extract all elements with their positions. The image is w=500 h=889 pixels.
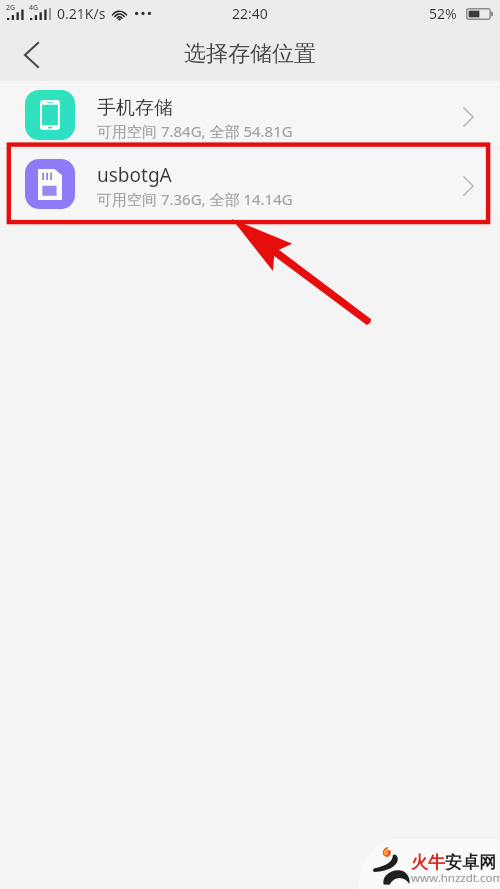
button[interactable]: 手机存储 bbox=[0, 81, 500, 148]
staticText: 可用空间 7.36G, 全部 14.14G bbox=[97, 189, 293, 209]
staticText: 安卓网 bbox=[445, 852, 496, 873]
button[interactable]: Back bbox=[0, 26, 55, 81]
staticText: 选择存储位置 bbox=[184, 40, 316, 68]
staticText: 2G bbox=[6, 3, 16, 13]
staticText: 52% bbox=[429, 4, 457, 23]
staticText: 4G bbox=[29, 3, 39, 13]
button[interactable]: usbotgA bbox=[0, 149, 500, 218]
staticText: www.hnzzdt.com bbox=[411, 870, 500, 886]
staticText: 22:40 bbox=[232, 4, 268, 23]
staticText: 火牛 bbox=[411, 852, 445, 873]
staticText: 手机存储 bbox=[97, 96, 173, 120]
staticText: usbotgA bbox=[97, 162, 172, 188]
staticText: 可用空间 7.84G, 全部 54.81G bbox=[97, 121, 293, 141]
staticText: 0.21K/s bbox=[57, 4, 106, 23]
